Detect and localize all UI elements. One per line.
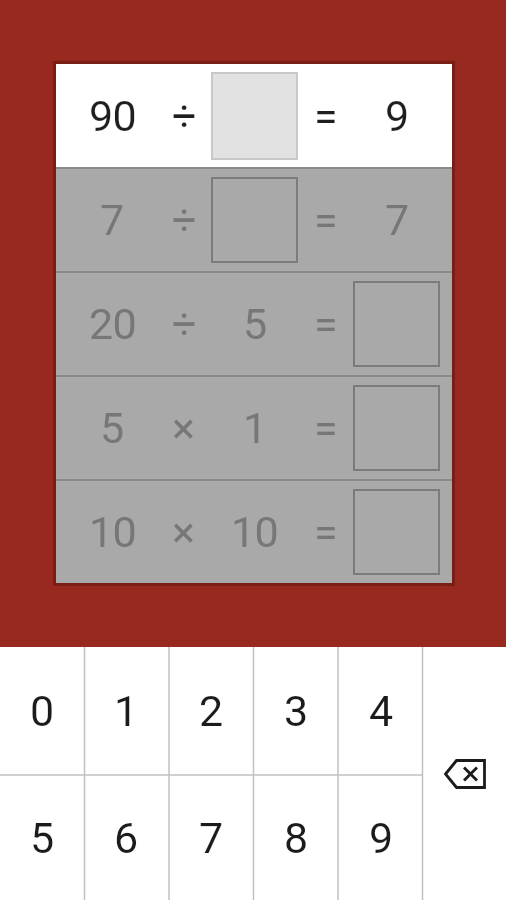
staticText: 7 [385,195,409,245]
staticText: 10 [231,507,278,557]
staticText: 5 [100,403,124,453]
staticText: 20 [89,299,136,349]
button[interactable]: 2 [168,647,253,775]
button[interactable] [353,385,440,471]
staticText: = [314,195,337,245]
button[interactable]: 4 [338,647,423,775]
staticText: 8 [284,813,308,863]
staticText: 1 [114,686,138,736]
staticText: = [314,91,337,141]
staticText: 2 [199,686,223,736]
button[interactable]: 6 [84,775,168,900]
button[interactable]: 3 [253,647,338,775]
staticText: 9 [369,813,393,863]
staticText: × [172,507,195,557]
staticText: = [314,403,337,453]
button[interactable]: 9 [338,775,423,900]
button[interactable] [211,177,298,263]
button[interactable]: 8 [253,775,338,900]
staticText: = [314,507,337,557]
staticText: 90 [89,91,136,141]
staticText: 7 [100,195,124,245]
button[interactable] [211,72,298,160]
staticText: 5 [243,299,267,349]
staticText: 5 [30,813,54,863]
staticText: ÷ [172,299,196,349]
staticText: 4 [369,686,393,736]
staticText: 9 [385,91,409,141]
button[interactable]: 0 [0,647,84,775]
staticText: 3 [284,686,308,736]
staticText: 1 [243,403,267,453]
staticText: 7 [199,813,223,863]
button[interactable] [423,647,506,900]
staticText: 0 [30,686,54,736]
staticText: 6 [114,813,138,863]
button[interactable] [353,281,440,367]
staticText: 10 [89,507,136,557]
button[interactable] [353,489,440,575]
button[interactable]: 5 [0,775,84,900]
staticText: ÷ [172,91,196,141]
staticText: ÷ [172,195,196,245]
staticText: = [314,299,337,349]
button[interactable]: 7 [168,775,253,900]
button[interactable]: 1 [84,647,168,775]
staticText: × [172,403,195,453]
